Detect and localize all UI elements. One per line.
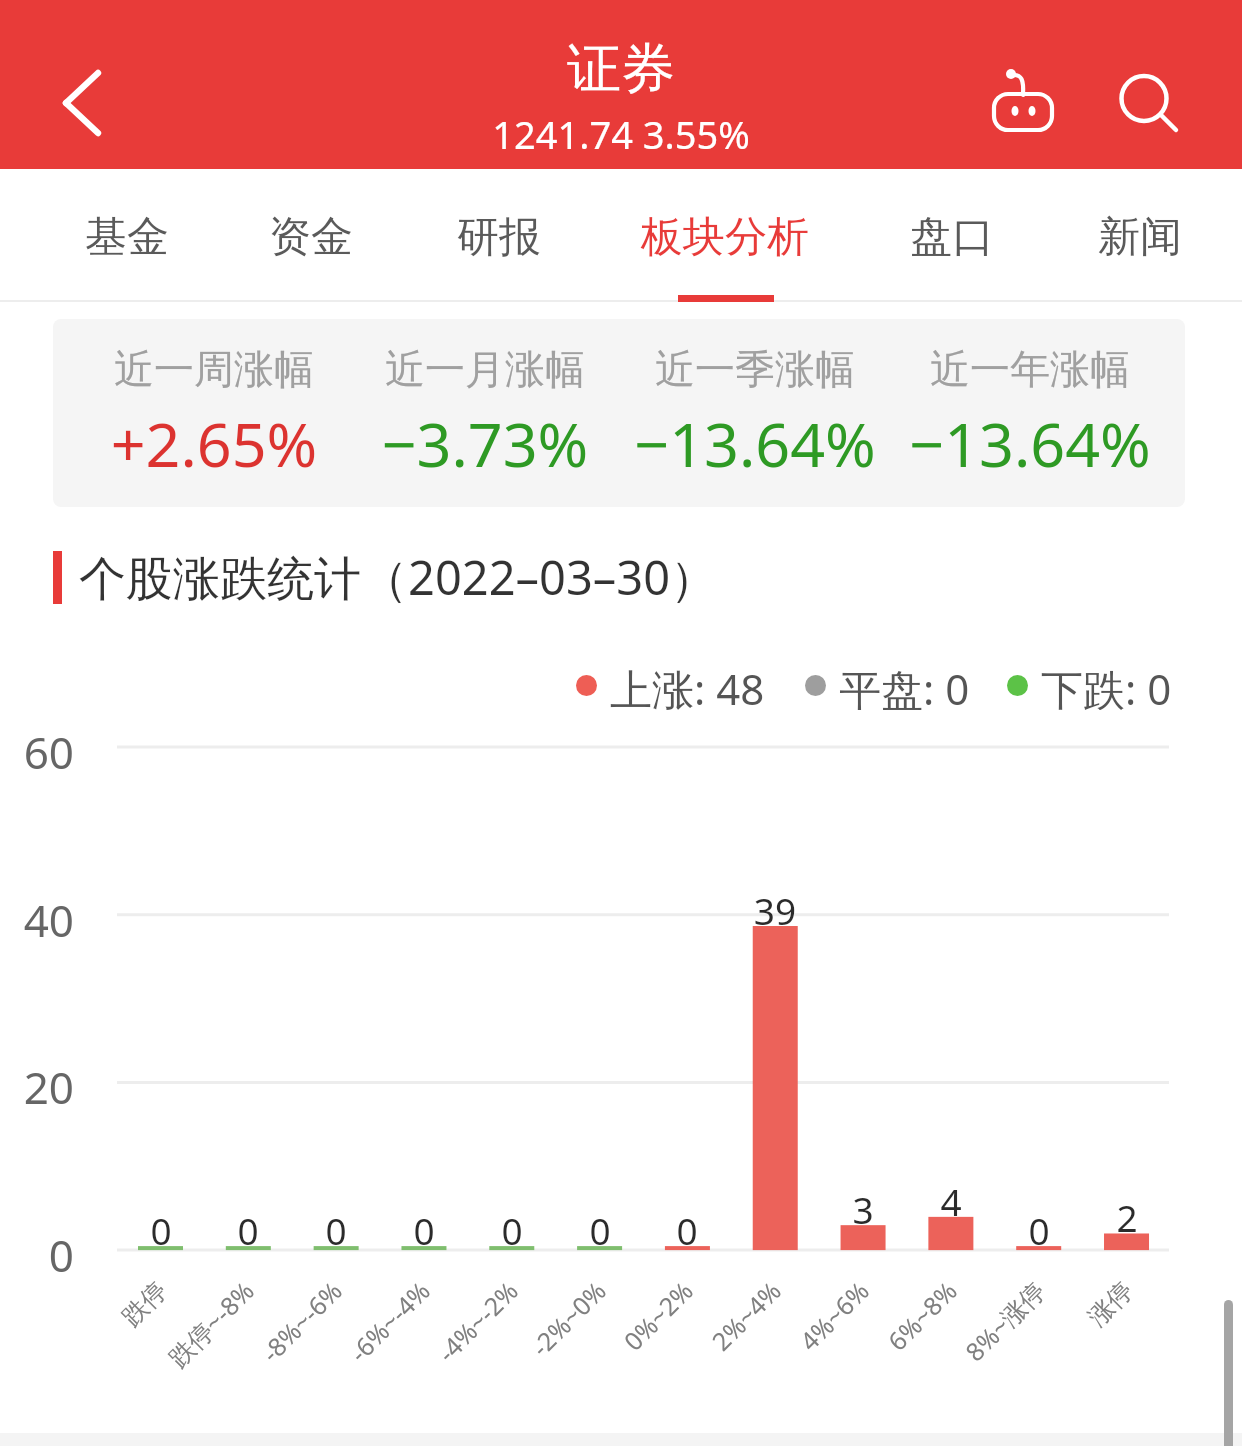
staticText: 0 xyxy=(627,1205,747,1255)
staticText: 基金 xyxy=(72,211,182,264)
staticText: 0 xyxy=(101,1205,221,1255)
staticText: 4%~6% xyxy=(625,1274,876,1446)
staticText: 下跌: 0 xyxy=(1041,660,1172,710)
staticText: +2.65% xyxy=(53,402,394,485)
staticText: −3.73% xyxy=(305,402,665,485)
staticText: 0 xyxy=(0,1225,74,1285)
button[interactable]: 基金 xyxy=(72,172,182,303)
button[interactable]: 盘口 xyxy=(897,172,1007,303)
staticText: −13.64% xyxy=(575,402,935,485)
staticText: -4%~-2% xyxy=(274,1274,525,1446)
staticText: 跌停 xyxy=(0,1275,173,1446)
staticText: 0 xyxy=(188,1205,308,1255)
button[interactable]: 下跌: 0 xyxy=(1007,660,1172,710)
staticText: 1241.74 3.55% xyxy=(0,108,1242,160)
staticText: -8%~-6% xyxy=(98,1274,349,1446)
staticText: −13.64% xyxy=(850,402,1185,485)
button[interactable]: 上涨: 48 xyxy=(576,660,765,710)
staticText: -6%~-4% xyxy=(186,1274,437,1446)
staticText: 0 xyxy=(276,1205,396,1255)
staticText: 盘口 xyxy=(897,211,1007,264)
staticText: 个股涨跌统计（2022–03–30） xyxy=(79,545,718,609)
staticText: 0 xyxy=(452,1205,572,1255)
button[interactable]: Assistant xyxy=(963,52,1083,142)
staticText: 60 xyxy=(0,722,74,782)
button[interactable]: 资金 xyxy=(256,172,366,303)
staticText: 跌停~-8% xyxy=(10,1274,261,1446)
staticText: 近一年涨幅 xyxy=(850,344,1185,394)
staticText: 3 xyxy=(803,1184,923,1234)
staticText: 板块分析 xyxy=(625,211,825,264)
staticText: 40 xyxy=(0,890,74,950)
staticText: 0 xyxy=(540,1205,660,1255)
staticText: 上涨: 48 xyxy=(610,660,765,710)
button[interactable]: Search xyxy=(1108,62,1198,142)
staticText: 2%~4% xyxy=(537,1274,788,1446)
staticText: -2%~0% xyxy=(362,1274,613,1446)
staticText: 研报 xyxy=(444,211,554,264)
button[interactable]: 研报 xyxy=(444,172,554,303)
staticText: 20 xyxy=(0,1057,74,1117)
button[interactable]: Back xyxy=(14,34,150,136)
staticText: 2 xyxy=(1067,1192,1187,1242)
staticText: 涨停 xyxy=(891,1275,1139,1446)
button[interactable]: 平盘: 0 xyxy=(805,660,970,710)
staticText: 6%~8% xyxy=(713,1274,964,1446)
staticText: 39 xyxy=(715,885,835,935)
button[interactable]: 新闻 xyxy=(1085,172,1195,303)
staticText: 0%~2% xyxy=(449,1274,700,1446)
button[interactable]: 板块分析 xyxy=(625,172,825,303)
staticText: 4 xyxy=(891,1176,1011,1226)
staticText: 8%~涨停 xyxy=(801,1274,1052,1446)
staticText: 资金 xyxy=(256,211,366,264)
staticText: 平盘: 0 xyxy=(839,660,970,710)
staticText: 0 xyxy=(979,1205,1099,1255)
staticText: 0 xyxy=(364,1205,484,1255)
staticText: 近一周涨幅 xyxy=(53,344,394,394)
staticText: 近一月涨幅 xyxy=(305,344,665,394)
staticText: 证券 xyxy=(0,35,1242,103)
staticText: 新闻 xyxy=(1085,211,1195,264)
staticText: 近一季涨幅 xyxy=(575,344,935,394)
